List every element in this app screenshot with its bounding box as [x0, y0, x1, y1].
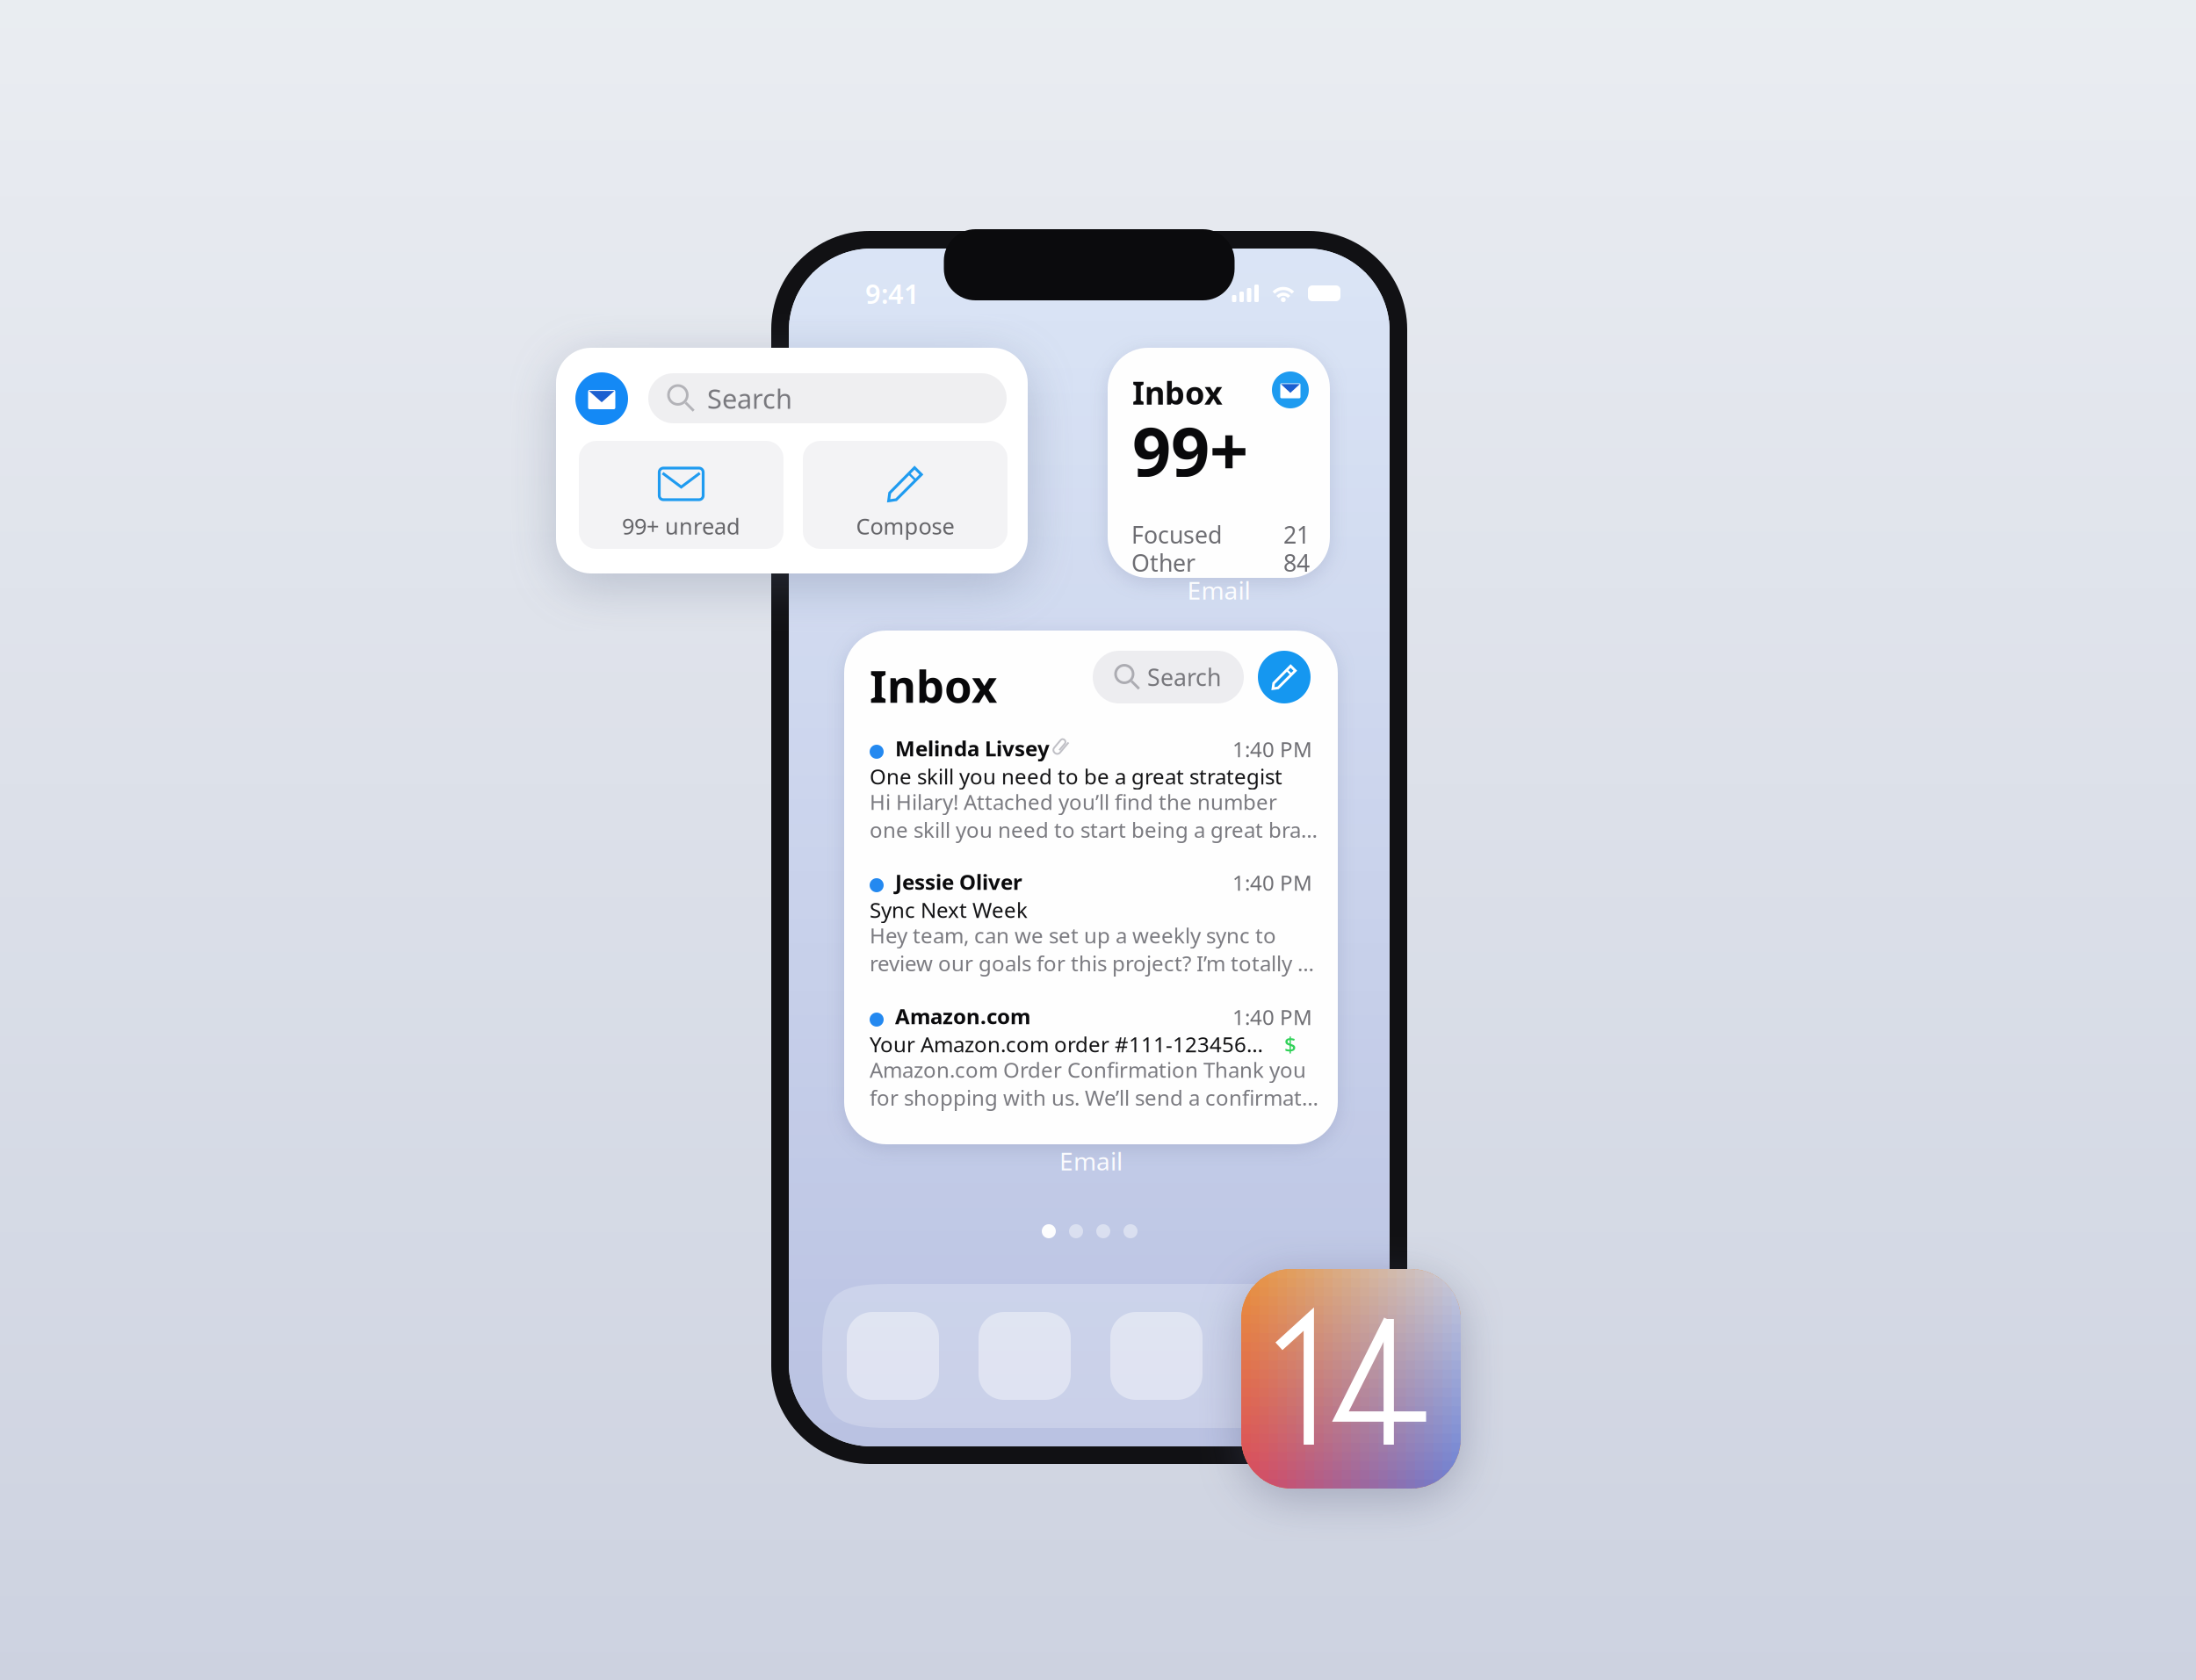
staticText: Email	[1059, 1145, 1123, 1177]
staticText: 1:40 PM	[1232, 1003, 1312, 1031]
staticText: Your Amazon.com order #111-12345678-1234…	[870, 1030, 1274, 1058]
staticText: One skill you need to be a great strateg…	[870, 762, 1282, 790]
staticText: Search	[1147, 662, 1221, 693]
staticText: 99+	[1132, 405, 1248, 495]
staticText: Email	[1187, 574, 1250, 606]
button[interactable]: Compose	[803, 441, 1008, 549]
button[interactable]: App	[1242, 1312, 1334, 1400]
button[interactable]: Melinda Livsey	[844, 631, 1338, 1144]
staticText: Melinda Livsey	[895, 734, 1050, 762]
staticText: Inbox	[1132, 371, 1223, 413]
staticText: Jessie Oliver	[895, 868, 1022, 896]
staticText: 99+ unread	[622, 511, 740, 541]
button[interactable]: Search	[648, 373, 1007, 423]
staticText: 1:40 PM	[1232, 735, 1312, 763]
button[interactable]: App	[979, 1312, 1071, 1400]
staticText: Compose	[856, 511, 954, 541]
button[interactable]: App	[1110, 1312, 1203, 1400]
staticText: 21	[1283, 519, 1310, 550]
staticText: Focused	[1131, 519, 1222, 550]
staticText: 84	[1283, 547, 1310, 578]
button[interactable]: Compose	[1258, 651, 1311, 703]
button[interactable]: Jessie Oliver	[844, 631, 1338, 1144]
button[interactable]: 99+ unread	[579, 441, 784, 549]
staticText: Sync Next Week	[870, 896, 1028, 924]
staticText: $	[1284, 1030, 1297, 1058]
staticText: Amazon.com	[895, 1002, 1030, 1030]
staticText: Hi Hilary! Attached you’ll find the numb…	[870, 788, 1318, 844]
staticText: Search	[707, 380, 792, 416]
button[interactable]: Amazon.com	[844, 631, 1338, 1144]
staticText: Hey team, can we set up a weekly sync to…	[870, 921, 1318, 977]
staticText: Other	[1131, 547, 1196, 578]
button[interactable]: Search	[1093, 651, 1244, 703]
button[interactable]: App	[847, 1312, 939, 1400]
staticText: Amazon.com Order Confirmation Thank you …	[870, 1056, 1318, 1112]
staticText: Inbox	[870, 656, 997, 715]
button[interactable]: Mail	[575, 372, 628, 425]
staticText: 9:41	[865, 275, 920, 311]
staticText: 1:40 PM	[1232, 869, 1312, 897]
